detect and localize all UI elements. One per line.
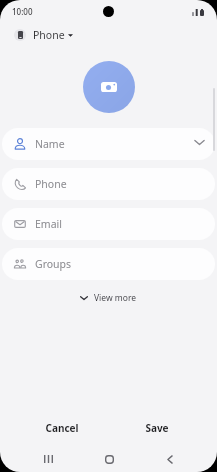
staticText: Cancel <box>45 421 79 435</box>
button[interactable]: Email <box>2 208 215 240</box>
staticText: Save <box>145 421 169 435</box>
button[interactable]: Recents <box>30 444 66 472</box>
staticText: Phone <box>33 28 65 42</box>
button[interactable]: Save <box>125 416 189 440</box>
staticText: Phone <box>35 177 67 191</box>
button[interactable]: Phone <box>0 25 217 45</box>
button[interactable]: Phone <box>2 168 215 200</box>
button[interactable]: Add photo <box>83 61 135 113</box>
button[interactable]: Back <box>152 444 188 472</box>
button[interactable]: Groups <box>2 248 215 280</box>
button[interactable]: Home <box>91 444 127 472</box>
staticText: Name <box>35 137 65 151</box>
staticText: Groups <box>35 257 72 271</box>
staticText: 10:00 <box>12 6 33 17</box>
staticText: View more <box>94 292 137 304</box>
button[interactable]: View more <box>75 289 142 306</box>
staticText: Email <box>35 217 62 231</box>
button[interactable]: Name <box>2 128 215 160</box>
button[interactable]: Cancel <box>30 416 94 440</box>
